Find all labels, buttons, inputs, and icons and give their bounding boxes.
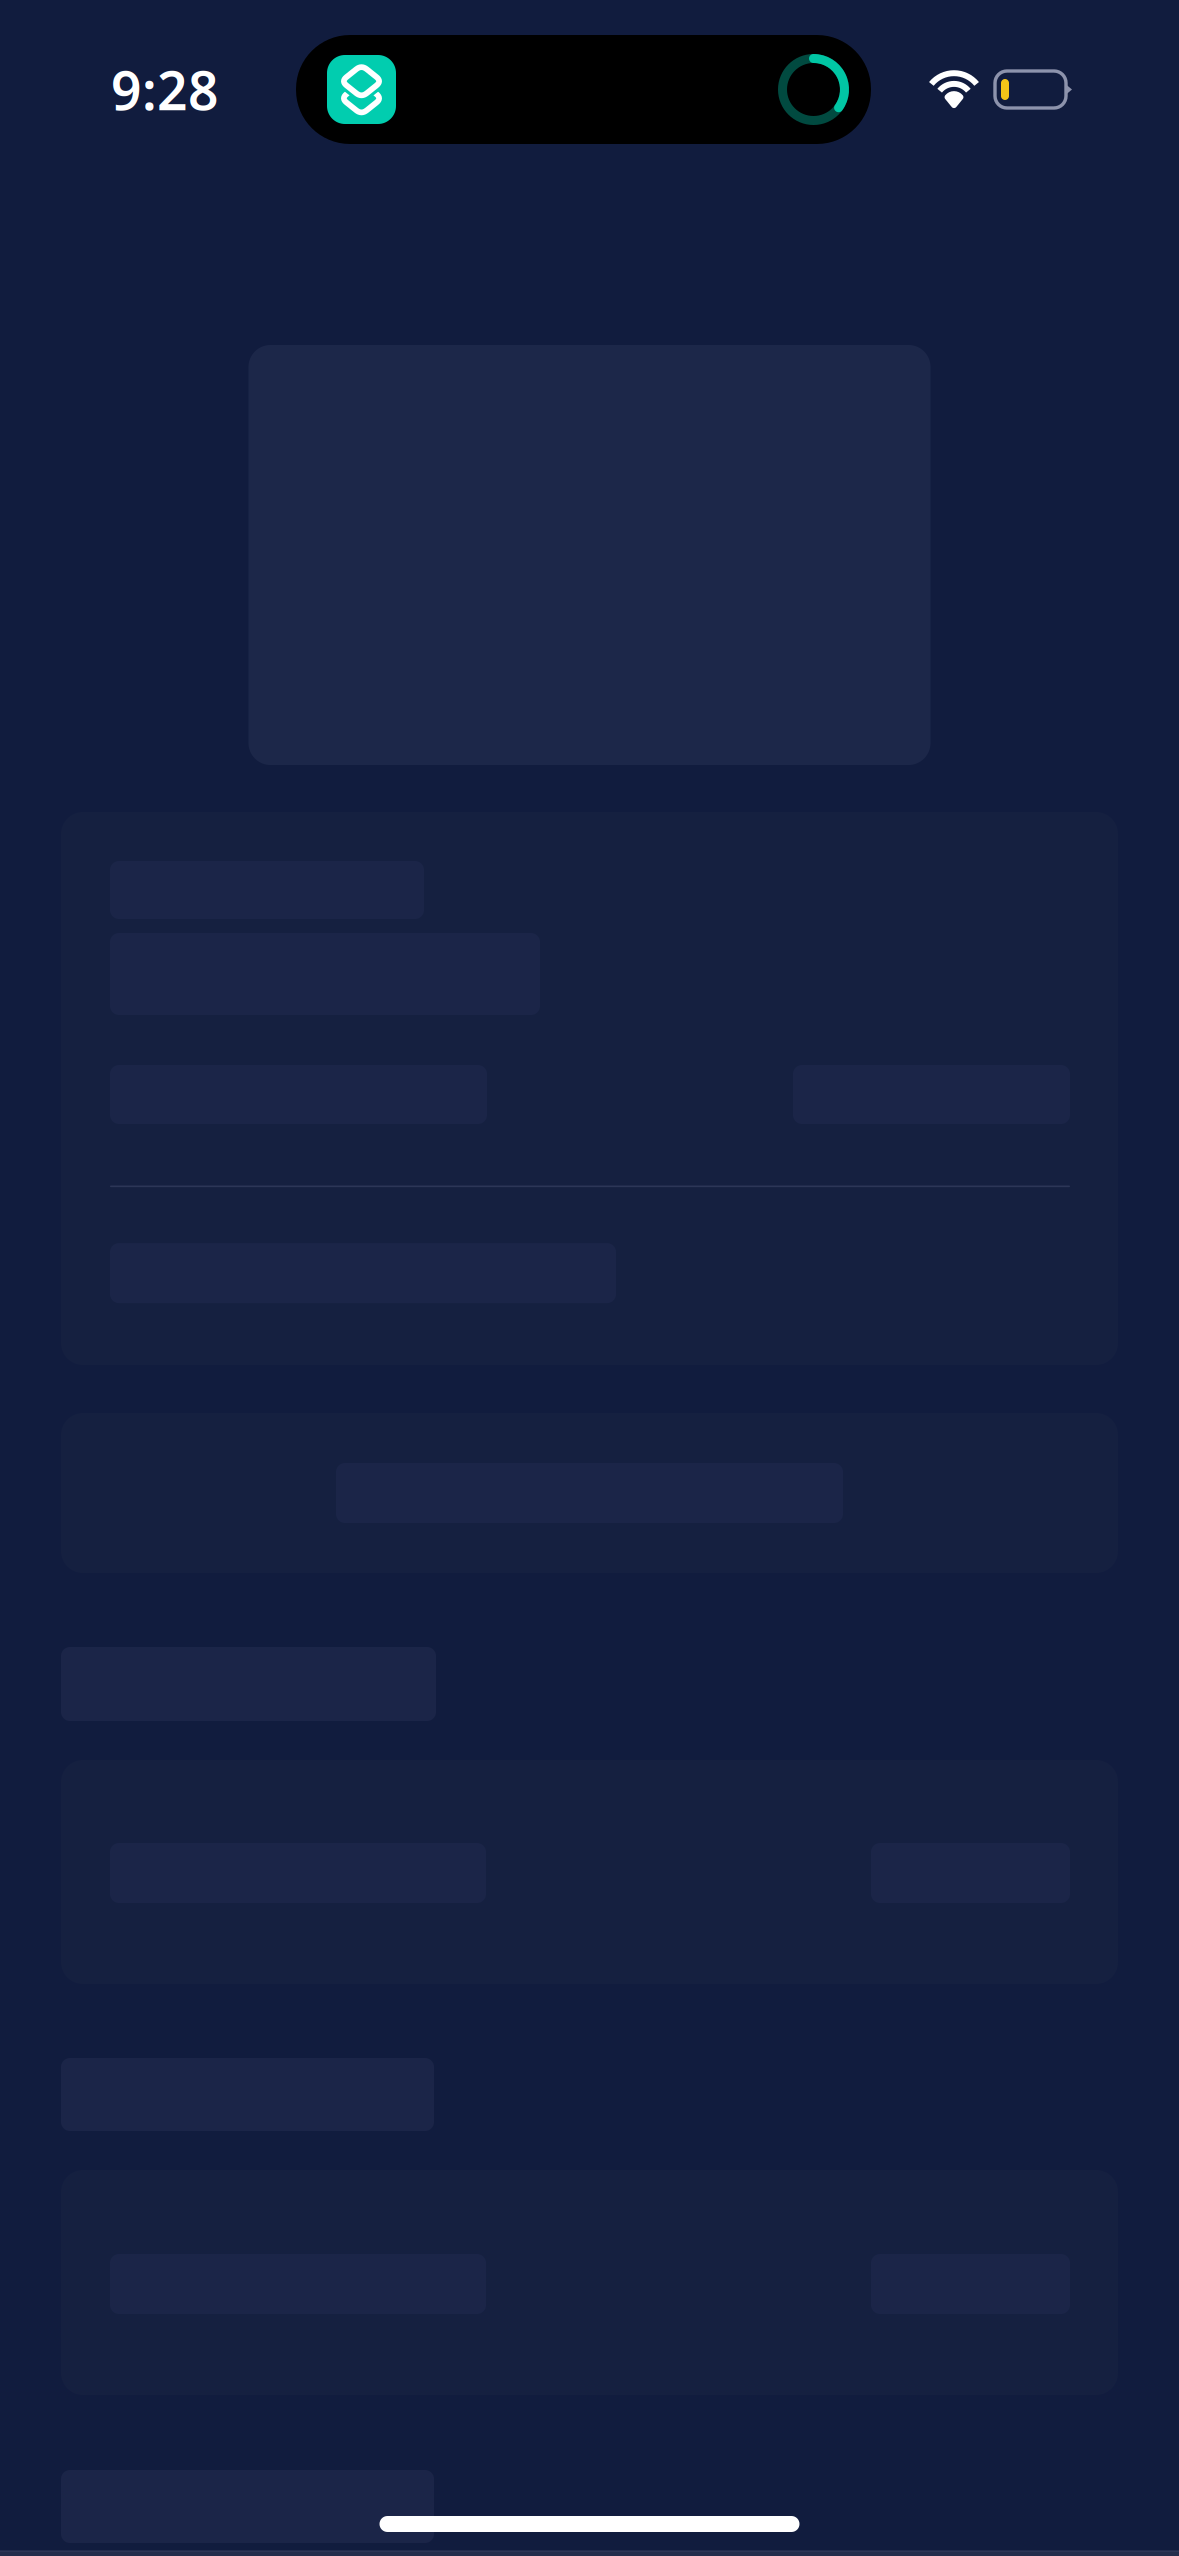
button[interactable]: Loading action	[61, 1413, 1118, 1573]
staticText: 9:28	[111, 54, 219, 125]
button[interactable]: Loading item	[61, 812, 1118, 1365]
